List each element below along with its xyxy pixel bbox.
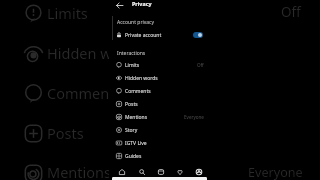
staticText: Guides (125, 153, 142, 160)
staticText: Mentions (125, 114, 148, 121)
staticText: Private account (125, 32, 162, 39)
staticText: Everyone (184, 114, 204, 120)
button[interactable]: Guides (109, 149, 208, 162)
button[interactable]: Back (114, 0, 125, 11)
staticText: Account privacy (117, 19, 155, 26)
staticText: Posts (125, 101, 138, 108)
staticText: Hidden wo (47, 43, 121, 63)
staticText: Everyone (248, 164, 303, 180)
staticText: Interactions (117, 50, 146, 57)
staticText: Comments (125, 88, 151, 95)
staticText: IGTV Live (125, 140, 147, 147)
button[interactable]: Comments (109, 84, 208, 97)
staticText: Limits (125, 62, 140, 69)
button[interactable]: Posts (109, 97, 208, 110)
button[interactable]: Search (132, 166, 151, 177)
button[interactable]: Private account toggle (193, 32, 203, 38)
staticText: Off (281, 3, 301, 21)
staticText: Privacy (132, 0, 152, 7)
staticText: Posts (47, 123, 84, 143)
button[interactable]: Activity (170, 166, 189, 177)
button[interactable]: Private account (109, 28, 208, 41)
button[interactable]: Story (109, 123, 208, 136)
staticText: Mentions (47, 162, 111, 180)
button[interactable]: Home (112, 166, 132, 177)
button[interactable]: Profile (189, 166, 208, 177)
staticText: Comments (47, 83, 122, 103)
staticText: Off (197, 62, 204, 68)
button[interactable]: Hidden words (109, 71, 208, 84)
button[interactable]: Reels (151, 166, 170, 177)
staticText: Hidden words (125, 75, 158, 82)
staticText: Limits (47, 3, 88, 23)
button[interactable]: IGTV Live (109, 136, 208, 149)
button[interactable]: Limits (109, 58, 208, 71)
button[interactable]: Mentions (109, 110, 208, 123)
staticText: Story (125, 127, 138, 134)
